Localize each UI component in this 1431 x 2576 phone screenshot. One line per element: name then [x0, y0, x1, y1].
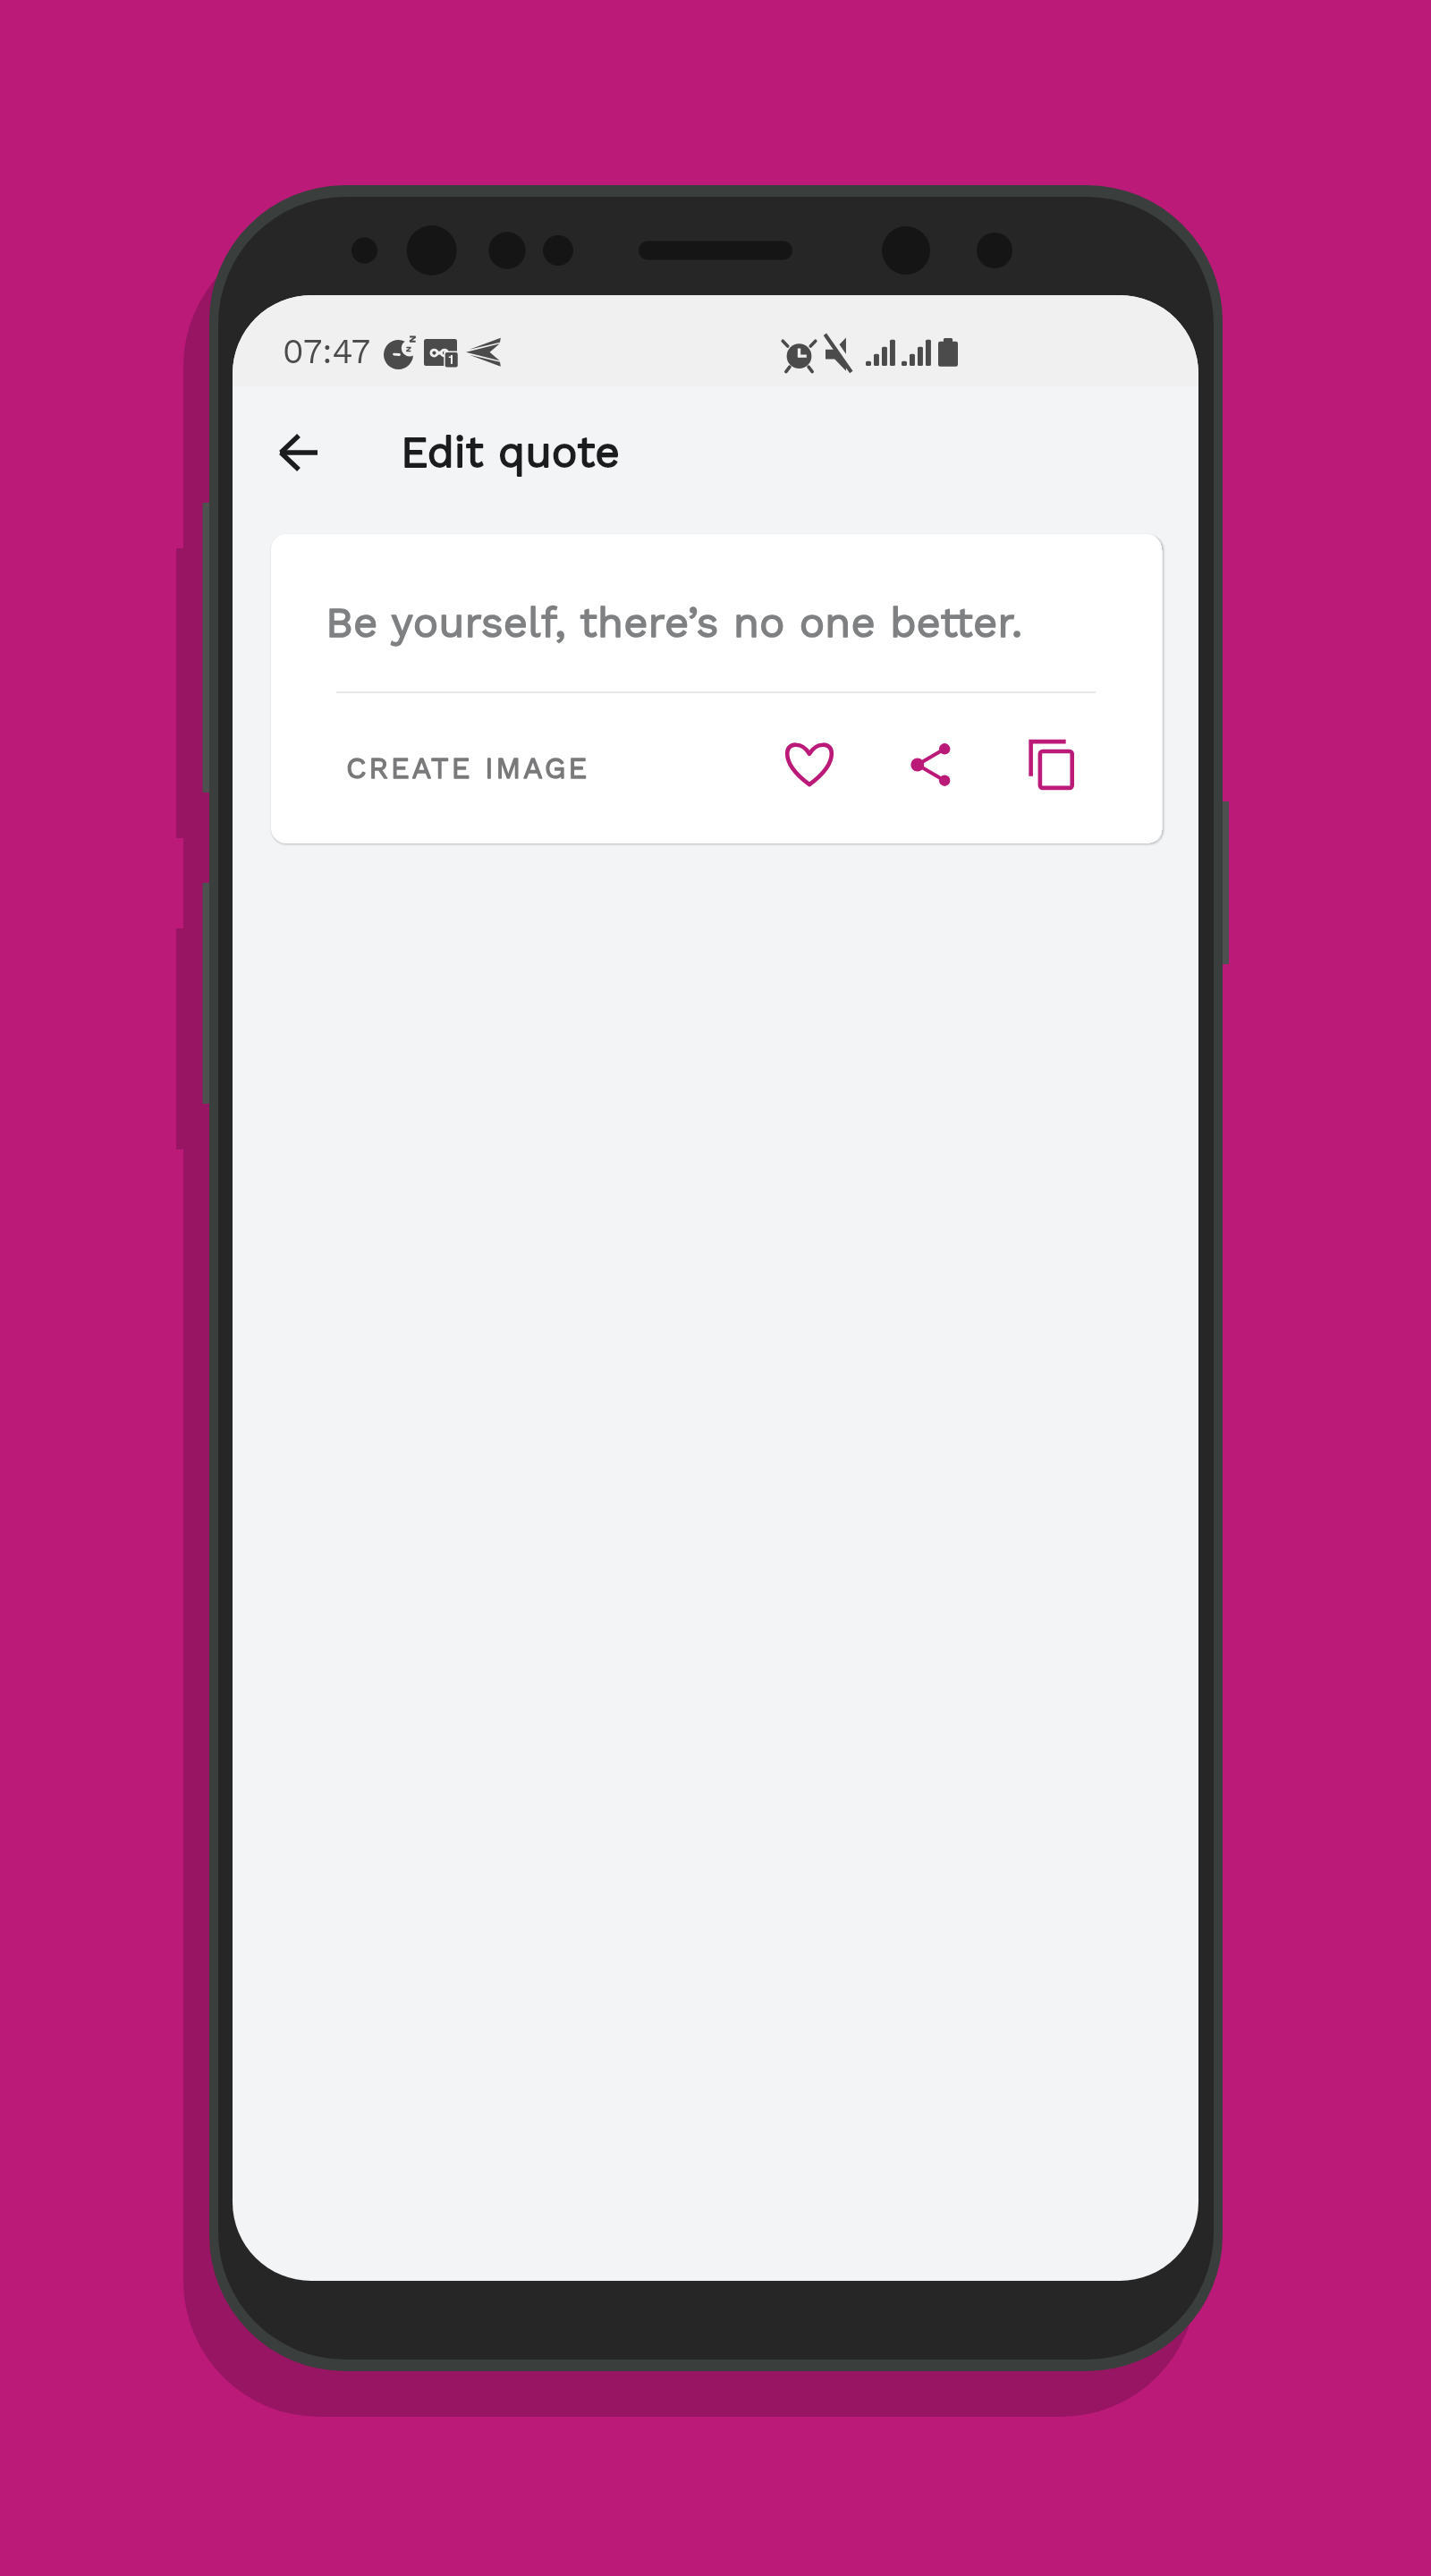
staticText: Be yourself, there’s no one better. [326, 597, 1023, 648]
staticText: CREATE IMAGE [346, 750, 589, 785]
button[interactable]: Back [233, 402, 322, 492]
staticText: 07:47 [283, 332, 371, 372]
staticText: Be yourself, there’s no one better. [326, 597, 1023, 648]
button[interactable]: Copy [1012, 725, 1091, 804]
staticText: CREATE IMAGE [346, 750, 589, 785]
button[interactable]: Share [892, 725, 970, 804]
button[interactable]: Favourite [770, 725, 849, 804]
button[interactable]: CREATE IMAGE [346, 750, 589, 785]
staticText: Edit quote [401, 427, 620, 477]
staticText: Edit quote [401, 427, 620, 477]
